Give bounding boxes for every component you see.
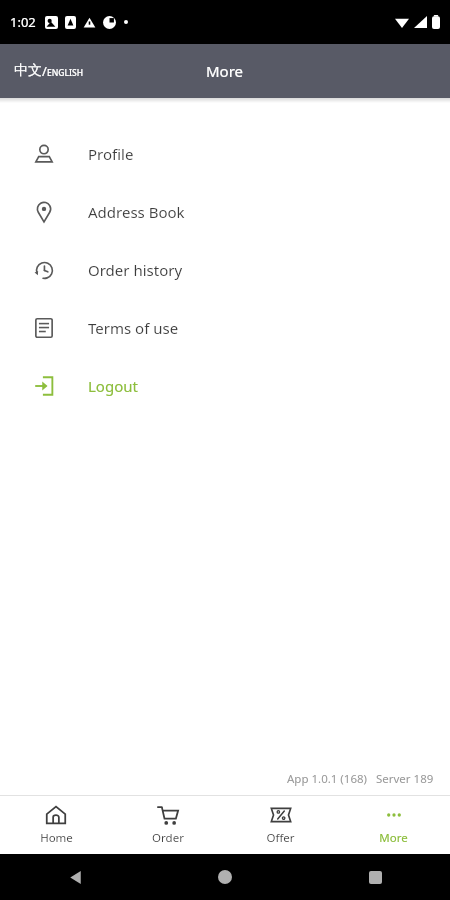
staticText: More xyxy=(206,61,244,81)
button[interactable]: Logout xyxy=(0,357,450,415)
button[interactable]: Offer xyxy=(224,796,337,854)
button[interactable]: Terms of use xyxy=(0,299,450,357)
staticText: ENGLISH xyxy=(47,67,84,79)
staticText: Order history xyxy=(88,260,183,280)
staticText: Offer xyxy=(266,830,295,846)
staticText: Logout xyxy=(88,376,138,396)
staticText: Home xyxy=(40,830,73,846)
button[interactable]: 中文 xyxy=(14,62,84,80)
staticText: Address Book xyxy=(88,202,185,222)
staticText: More xyxy=(379,830,408,846)
button[interactable]: Order history xyxy=(0,241,450,299)
staticText: App 1.0.1 (168) Server 189 xyxy=(287,771,434,787)
staticText: 中文 xyxy=(14,62,42,80)
button[interactable]: Order xyxy=(112,796,224,854)
staticText: Order xyxy=(152,830,184,846)
button[interactable]: More xyxy=(337,796,450,854)
staticText: Profile xyxy=(88,144,134,164)
button[interactable]: Address Book xyxy=(0,183,450,241)
button[interactable]: Profile xyxy=(0,125,450,183)
button[interactable]: Home xyxy=(0,796,112,854)
staticText: 1:02 xyxy=(10,13,36,31)
staticText: / xyxy=(42,62,47,80)
staticText: Terms of use xyxy=(88,318,179,338)
